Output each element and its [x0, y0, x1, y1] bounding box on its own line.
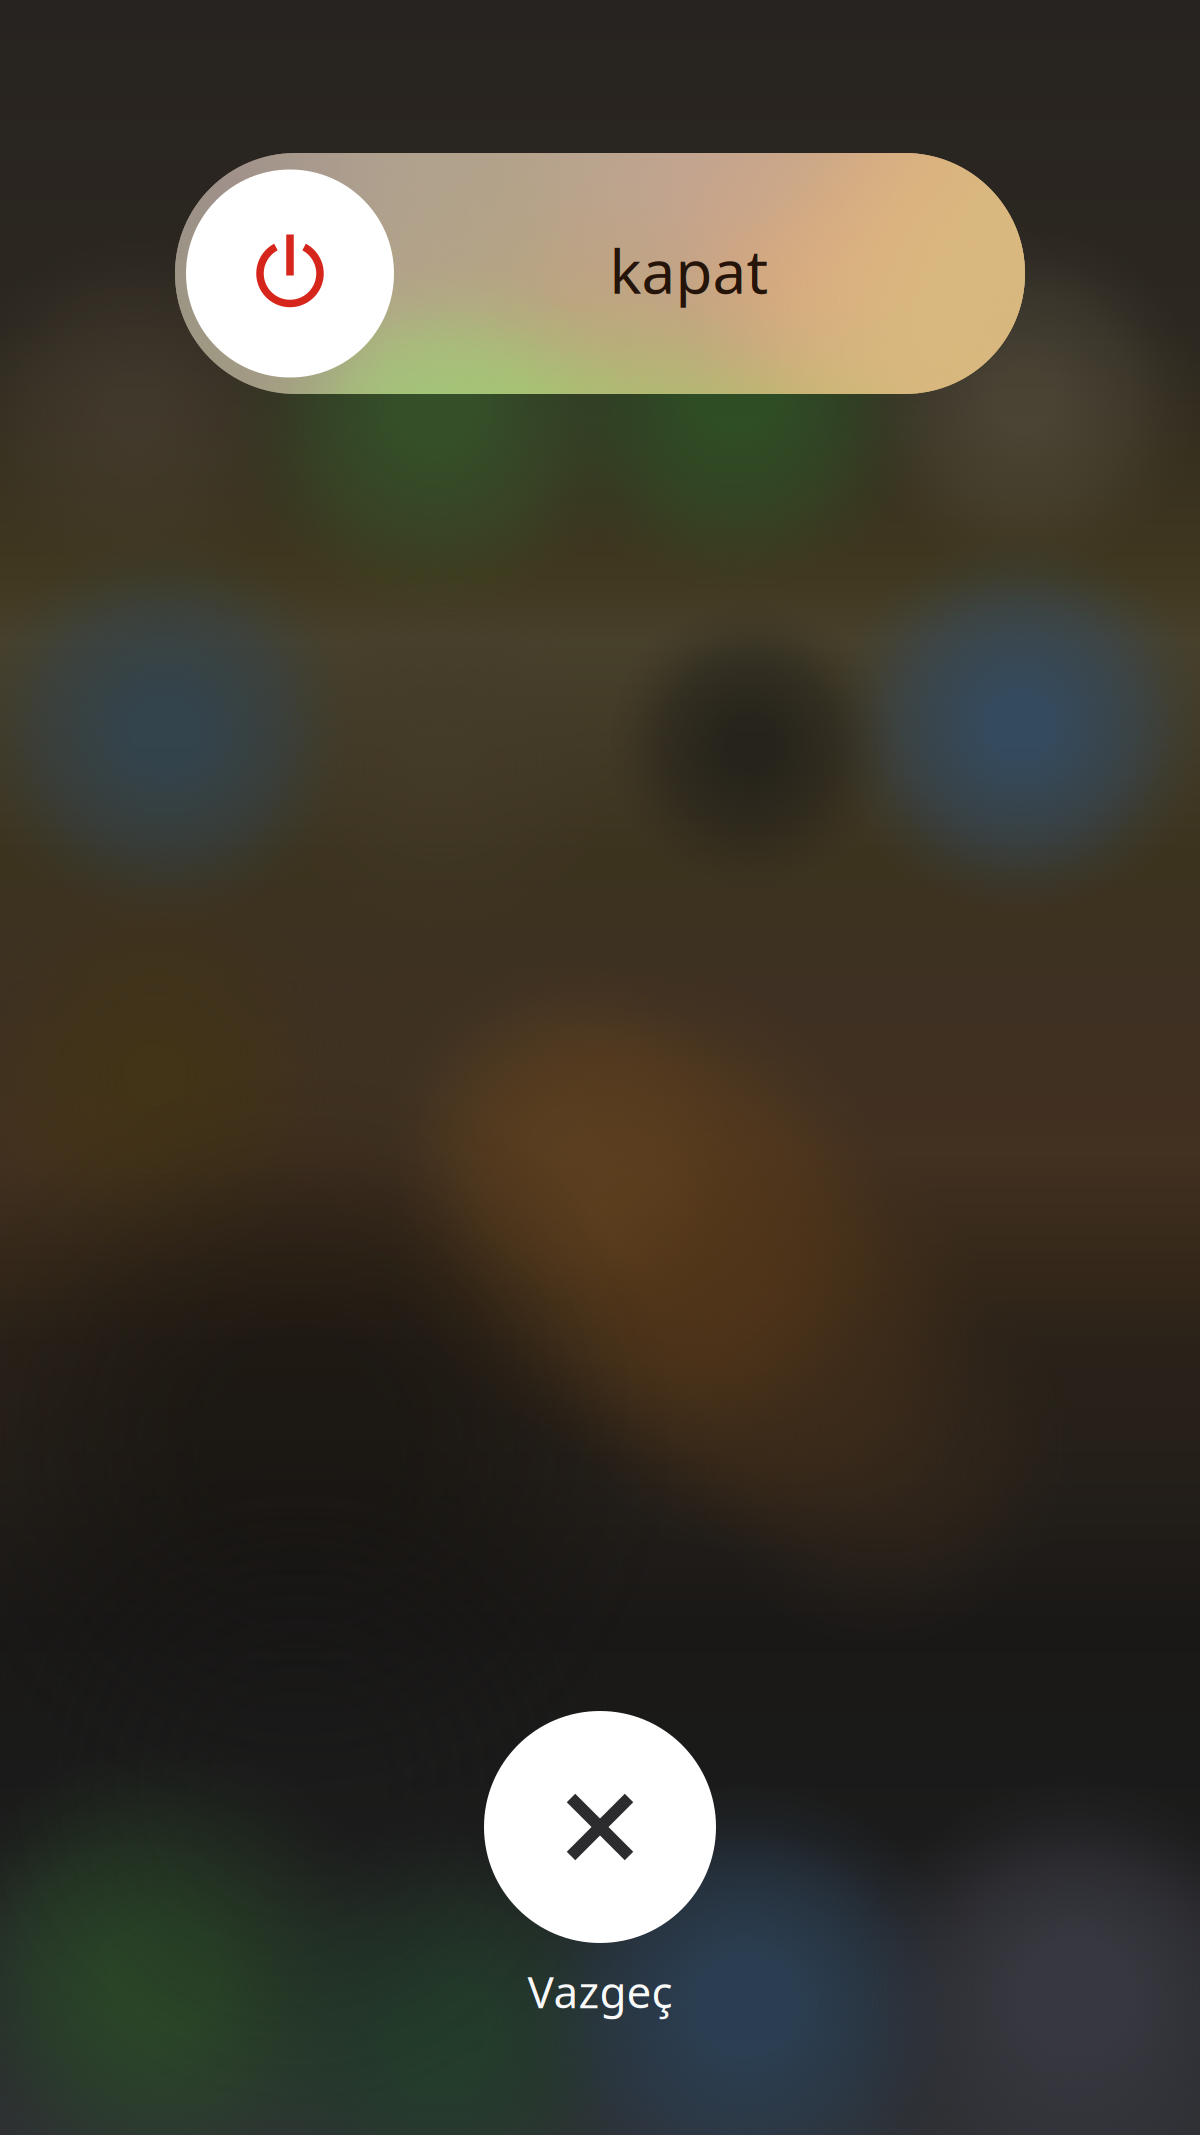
staticText: kapat	[609, 231, 768, 310]
staticText: Vazgeç	[527, 1962, 672, 2020]
button[interactable]: kapat	[175, 153, 1025, 394]
button[interactable]: Vazgeç	[484, 1711, 716, 2020]
